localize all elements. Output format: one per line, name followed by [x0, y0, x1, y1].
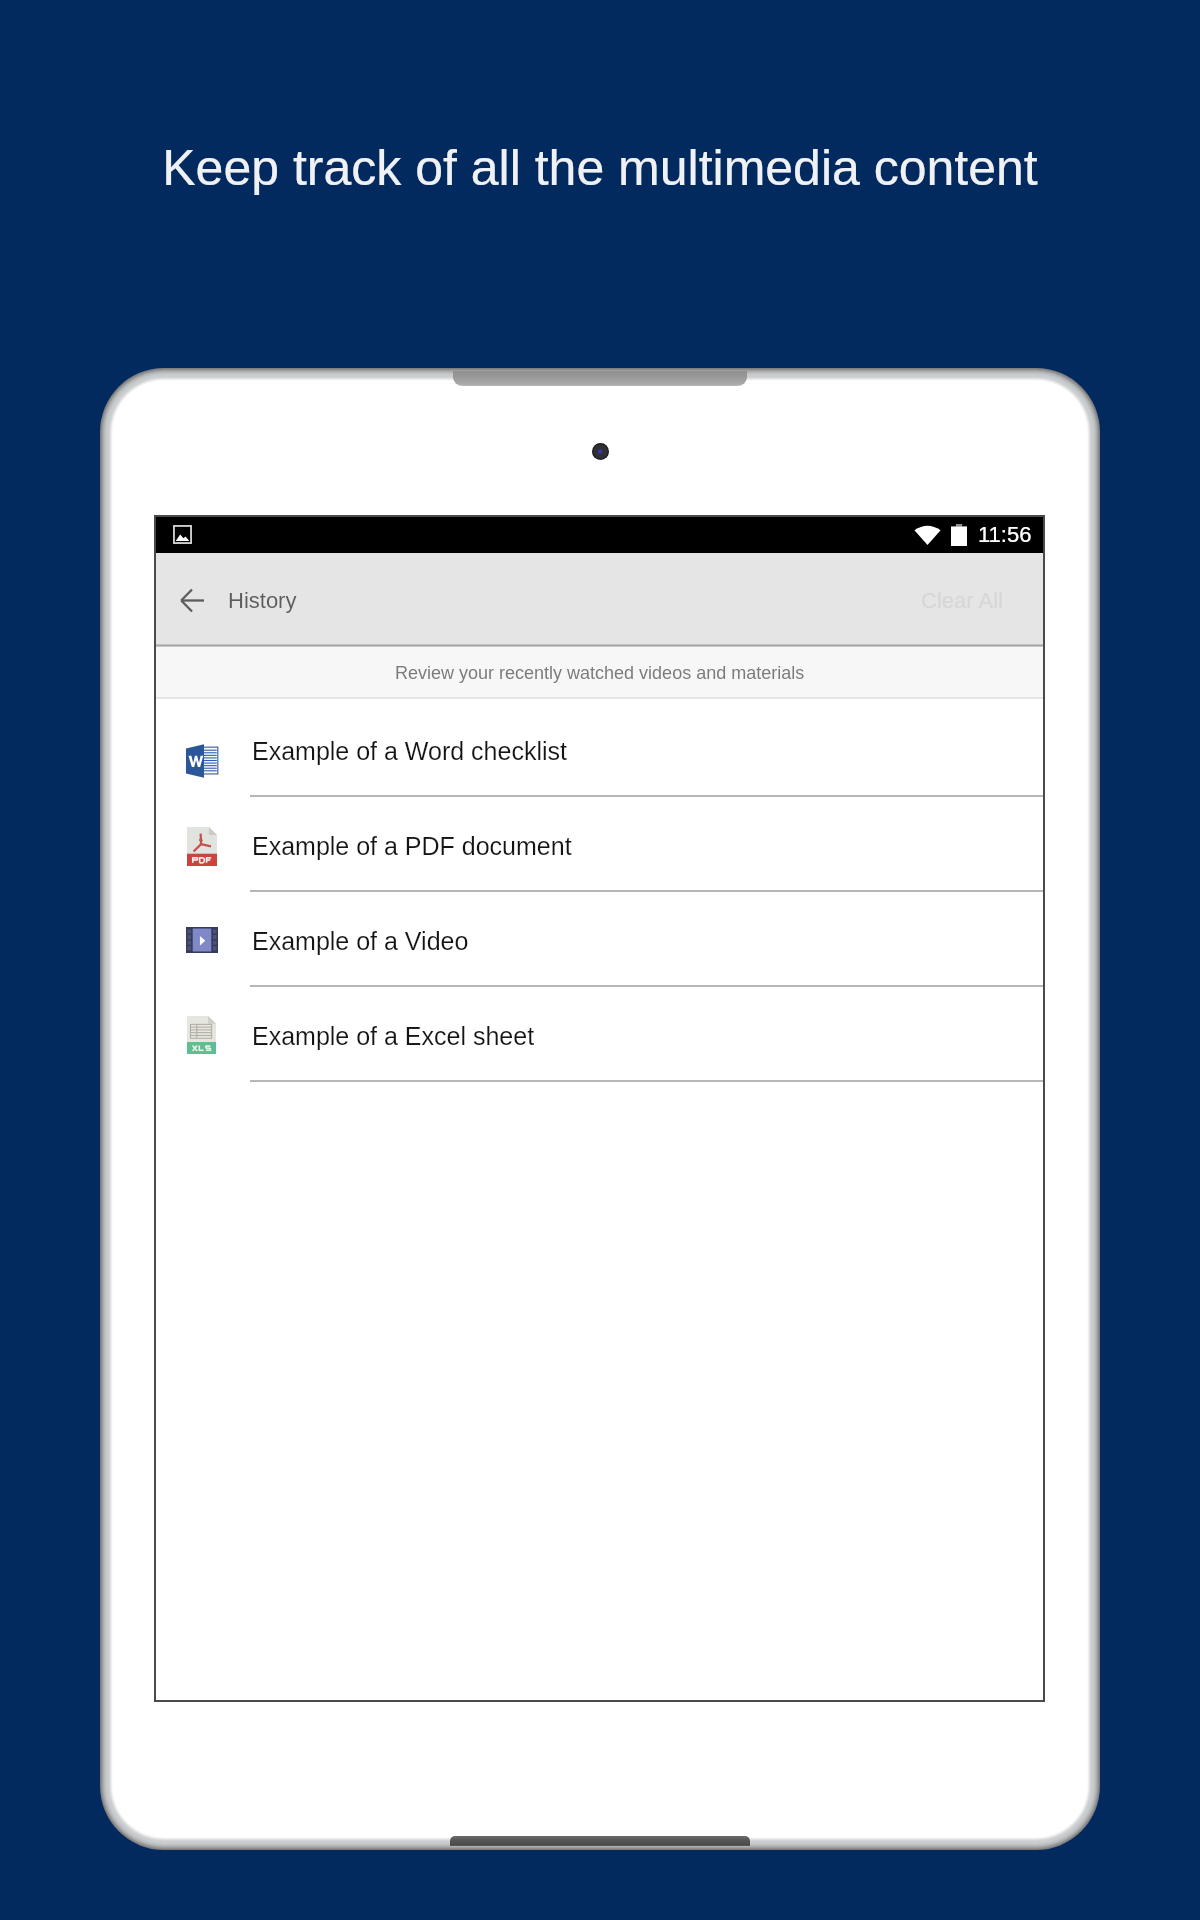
staticText: Example of a PDF document [252, 832, 572, 860]
staticText: Clear All [921, 588, 1003, 613]
staticText: Keep track of all the multimedia content [162, 140, 1038, 196]
button[interactable]: Back [155, 553, 228, 647]
button[interactable]: Example of a PDF document [155, 797, 1044, 892]
button[interactable]: Example of a Word checklist [155, 702, 1044, 797]
staticText: 11:56 [978, 522, 1032, 547]
button[interactable]: Example of a Video [155, 892, 1044, 987]
staticText: Example of a Excel sheet [252, 1022, 535, 1050]
staticText: Example of a Word checklist [252, 737, 567, 765]
button[interactable]: Example of a Excel sheet [155, 987, 1044, 1082]
staticText: History [228, 588, 297, 613]
staticText: Review your recently watched videos and … [395, 663, 805, 683]
staticText: Example of a Video [252, 927, 469, 955]
button[interactable]: Clear All [878, 553, 1044, 647]
